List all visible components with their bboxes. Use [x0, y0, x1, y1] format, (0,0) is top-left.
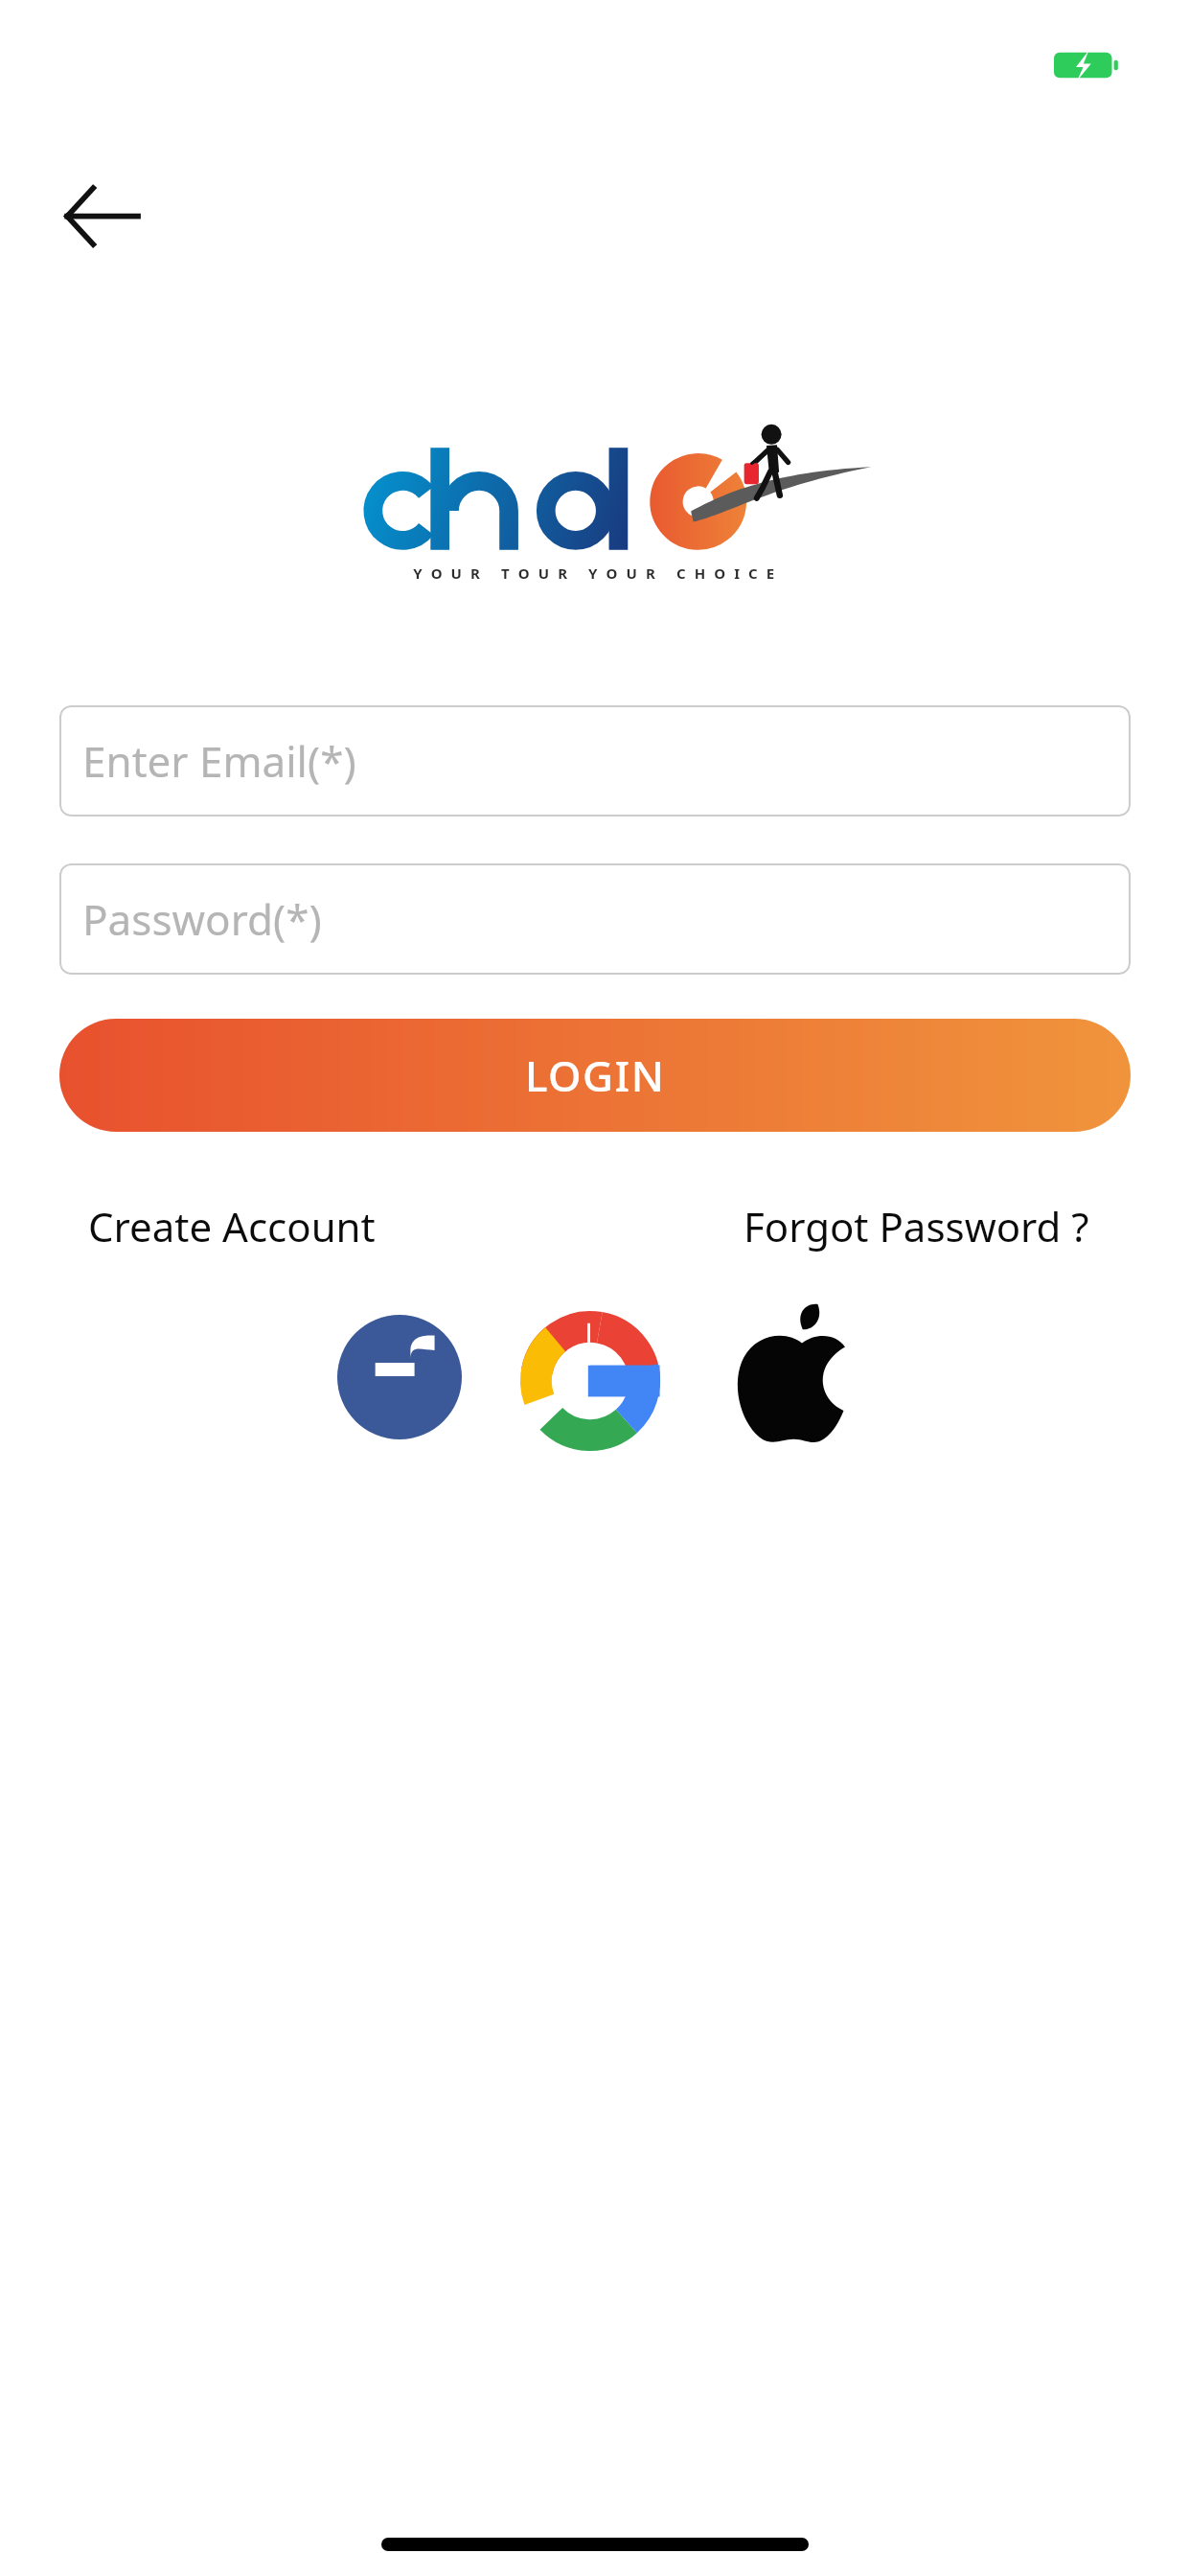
staticText: Y O U R T O U R Y O U R C H O I C E: [413, 563, 777, 583]
other: Battery charging: [1054, 46, 1123, 84]
staticText: Create Account: [88, 1199, 376, 1253]
button[interactable]: Sign in with Facebook: [337, 1315, 462, 1439]
staticText: LOGIN: [525, 1046, 666, 1104]
button[interactable]: Create Account: [84, 1193, 379, 1259]
button[interactable]: Sign in with Apple: [730, 1301, 874, 1445]
button[interactable]: LOGIN: [59, 1019, 1131, 1132]
staticText: Password(*): [82, 890, 322, 948]
button[interactable]: Sign in with Google: [520, 1311, 660, 1451]
button[interactable]: Forgot Password ?: [740, 1193, 1093, 1259]
button[interactable]: Password(*): [59, 863, 1131, 975]
button[interactable]: Back: [46, 161, 161, 276]
staticText: Forgot Password ?: [744, 1199, 1089, 1253]
staticText: Enter Email(*): [82, 732, 356, 790]
button[interactable]: Enter Email(*): [59, 705, 1131, 816]
